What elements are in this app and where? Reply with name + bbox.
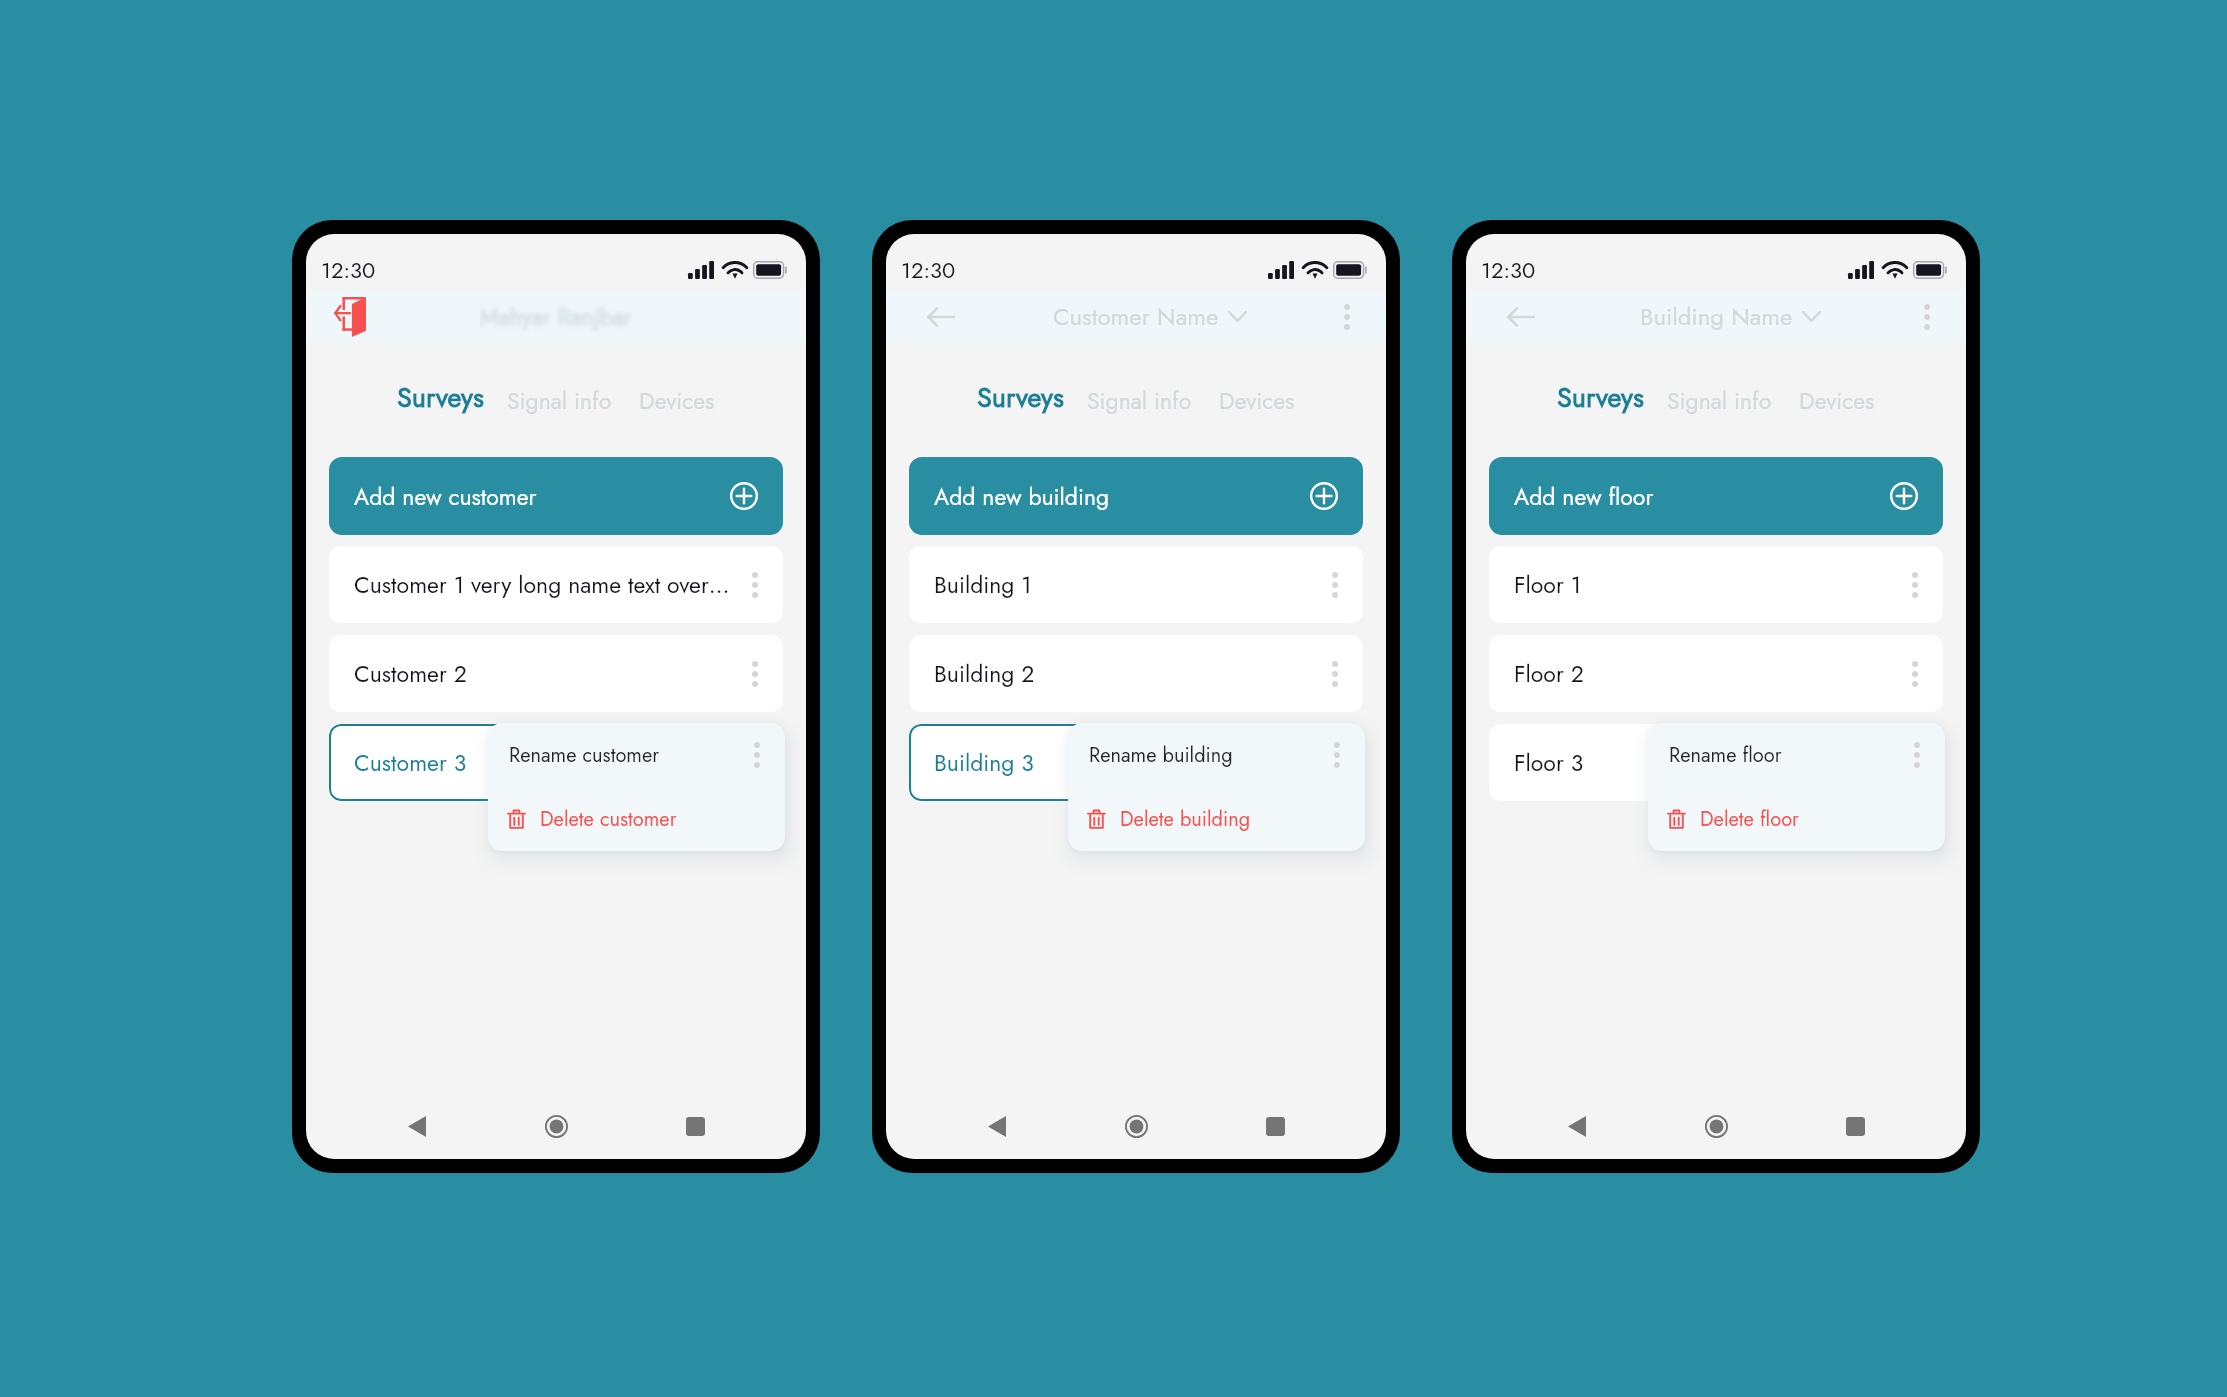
button[interactable]: Back: [918, 295, 962, 339]
button[interactable]: Signal info: [507, 384, 612, 417]
button[interactable]: Building 3: [909, 724, 1363, 801]
button[interactable]: Add new floor: [1489, 457, 1943, 535]
button[interactable]: Signal info: [1087, 384, 1192, 417]
staticText: Delete building: [1120, 805, 1251, 834]
staticText: Surveys: [1557, 378, 1644, 417]
staticText: Add new building: [934, 480, 1110, 513]
staticText: Customer 1 very long name text over…: [354, 568, 730, 601]
staticText: Add new floor: [1514, 480, 1654, 513]
button[interactable]: Recents: [1832, 1103, 1878, 1149]
button[interactable]: More options: [1325, 295, 1369, 339]
button[interactable]: Customer 1 very long name text over…: [329, 546, 783, 623]
staticText: Rename building: [1089, 741, 1233, 770]
button[interactable]: Signal info: [1667, 384, 1772, 417]
staticText: 12:30: [1481, 254, 1536, 286]
button[interactable]: Devices: [639, 384, 715, 417]
button[interactable]: Recents: [1252, 1103, 1298, 1149]
button[interactable]: Add new customer: [329, 457, 783, 535]
staticText: Floor 3: [1514, 746, 1584, 779]
button[interactable]: Recents: [672, 1103, 718, 1149]
button[interactable]: Rename customer: [488, 723, 785, 787]
staticText: Add new customer: [354, 480, 537, 513]
button[interactable]: Building Name: [1640, 299, 1821, 334]
button[interactable]: Rename building: [1068, 723, 1365, 787]
button[interactable]: Back: [394, 1103, 440, 1149]
button[interactable]: Home: [533, 1103, 579, 1149]
staticText: Signal info: [1667, 384, 1772, 417]
staticText: Devices: [1799, 384, 1875, 417]
staticText: Delete customer: [540, 805, 677, 834]
button[interactable]: Back: [1554, 1103, 1600, 1149]
button[interactable]: Floor 3: [1489, 724, 1943, 801]
button[interactable]: Building 1: [909, 546, 1363, 623]
staticText: Signal info: [1087, 384, 1192, 417]
button[interactable]: Devices: [1219, 384, 1295, 417]
staticText: Building 1: [934, 568, 1032, 601]
staticText: Rename customer: [509, 741, 660, 770]
button[interactable]: Surveys: [1557, 378, 1644, 417]
button[interactable]: Building 2: [909, 635, 1363, 712]
button[interactable]: More options: [1317, 745, 1353, 781]
button[interactable]: Home: [1693, 1103, 1739, 1149]
staticText: Surveys: [397, 378, 484, 417]
button[interactable]: Delete customer: [488, 787, 785, 851]
button[interactable]: Delete building: [1068, 787, 1365, 851]
staticText: Devices: [639, 384, 715, 417]
staticText: Rename floor: [1669, 741, 1782, 770]
button[interactable]: More options: [1905, 295, 1949, 339]
staticText: Building 2: [934, 657, 1035, 690]
button[interactable]: More options: [1897, 656, 1933, 692]
button[interactable]: Log out: [328, 295, 372, 339]
staticText: Customer Name: [1053, 299, 1219, 334]
button[interactable]: Floor 2: [1489, 635, 1943, 712]
button[interactable]: More options: [737, 656, 773, 692]
button[interactable]: Rename floor: [1648, 723, 1945, 787]
staticText: Customer 2: [354, 657, 467, 690]
staticText: Building Name: [1640, 299, 1793, 334]
button[interactable]: Home: [1113, 1103, 1159, 1149]
button[interactable]: Floor 1: [1489, 546, 1943, 623]
button[interactable]: Delete floor: [1648, 787, 1945, 851]
button[interactable]: Customer Name: [1053, 299, 1247, 334]
button[interactable]: Devices: [1799, 384, 1875, 417]
staticText: Customer 3: [354, 746, 467, 779]
button[interactable]: More options: [1897, 567, 1933, 603]
button[interactable]: More options: [1317, 567, 1353, 603]
button[interactable]: More options: [1317, 656, 1353, 692]
button[interactable]: Add new building: [909, 457, 1363, 535]
staticText: Surveys: [977, 378, 1064, 417]
staticText: Devices: [1219, 384, 1295, 417]
staticText: Building 3: [934, 746, 1034, 779]
staticText: Signal info: [507, 384, 612, 417]
button[interactable]: More options: [737, 745, 773, 781]
staticText: 12:30: [901, 254, 956, 286]
staticText: 12:30: [321, 254, 376, 286]
staticText: Floor 2: [1514, 657, 1584, 690]
staticText: Delete floor: [1700, 805, 1799, 834]
staticText: Floor 1: [1514, 568, 1582, 601]
button[interactable]: Surveys: [977, 378, 1064, 417]
button[interactable]: More options: [737, 567, 773, 603]
button[interactable]: Surveys: [397, 378, 484, 417]
button[interactable]: More options: [1897, 745, 1933, 781]
button[interactable]: Back: [974, 1103, 1020, 1149]
staticText: Mahyar Ranjbar: [480, 300, 632, 333]
button[interactable]: Customer 3: [329, 724, 783, 801]
button[interactable]: Back: [1498, 295, 1542, 339]
button[interactable]: Customer 2: [329, 635, 783, 712]
